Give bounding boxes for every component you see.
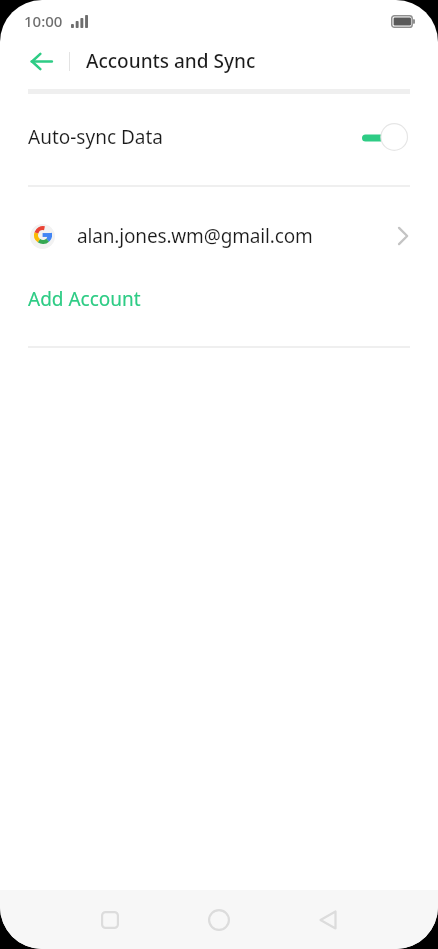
staticText: 10:00: [24, 11, 63, 31]
button[interactable]: Back: [20, 40, 62, 82]
button[interactable]: Home: [183, 890, 255, 949]
button[interactable]: alan.jones.wm@gmail.com: [0, 187, 438, 285]
staticText: Add Account: [28, 286, 141, 312]
staticText: alan.jones.wm@gmail.com: [77, 223, 313, 249]
button[interactable]: Add Account: [0, 269, 438, 329]
button[interactable]: Back: [292, 890, 364, 949]
button[interactable]: Auto-sync Data: [0, 91, 438, 183]
staticText: Auto-sync Data: [28, 124, 163, 150]
staticText: Accounts and Sync: [86, 48, 256, 74]
button[interactable]: Recent apps: [74, 890, 146, 949]
button[interactable]: Auto-sync Data toggle: [362, 123, 408, 151]
